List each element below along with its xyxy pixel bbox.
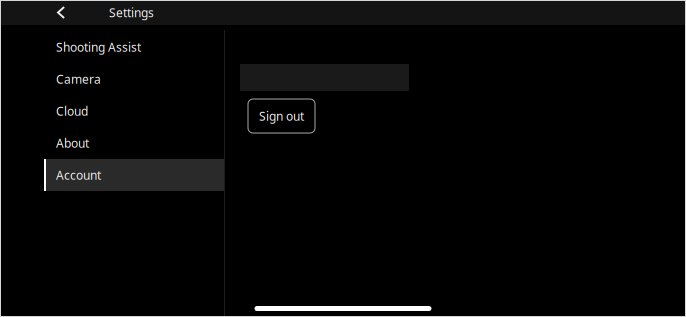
staticText: Camera [56,71,101,87]
staticText: Sign out [259,108,304,124]
staticText: About [56,135,89,151]
button[interactable]: Sign out [248,99,315,133]
button[interactable]: Account [44,159,224,191]
button[interactable]: Shooting Assist [44,31,224,63]
button[interactable]: Camera [44,63,224,95]
staticText: Account [56,167,101,183]
button[interactable]: Cloud [44,95,224,127]
staticText: Cloud [56,103,88,119]
staticText: Settings [109,4,154,20]
button[interactable]: About [44,127,224,159]
staticText: Shooting Assist [56,39,141,55]
button[interactable]: Back [48,0,74,25]
